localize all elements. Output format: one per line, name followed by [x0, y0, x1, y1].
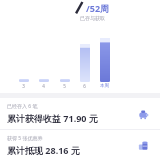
button[interactable]: 已经存入 6 笔 [0, 98, 160, 129]
staticText: 3 [22, 83, 25, 89]
staticText: /52周 [86, 2, 110, 14]
staticText: 累计获得收益 71.90 元 [7, 112, 98, 124]
staticText: 累计抵现 28.16 元 [7, 144, 80, 156]
staticText: 已经存入 6 笔 [7, 103, 38, 110]
other: 抵现明细 [135, 137, 151, 153]
staticText: 5 [63, 83, 66, 89]
button[interactable]: 获得 5 张优惠券 [0, 130, 160, 160]
staticText: 6 [83, 83, 86, 89]
staticText: 获得 5 张优惠券 [7, 135, 43, 142]
staticText: 本周 [100, 83, 109, 89]
staticText: 已存与获取 [80, 15, 105, 21]
other: 收益明细 [135, 106, 151, 122]
staticText: 4 [42, 83, 45, 89]
